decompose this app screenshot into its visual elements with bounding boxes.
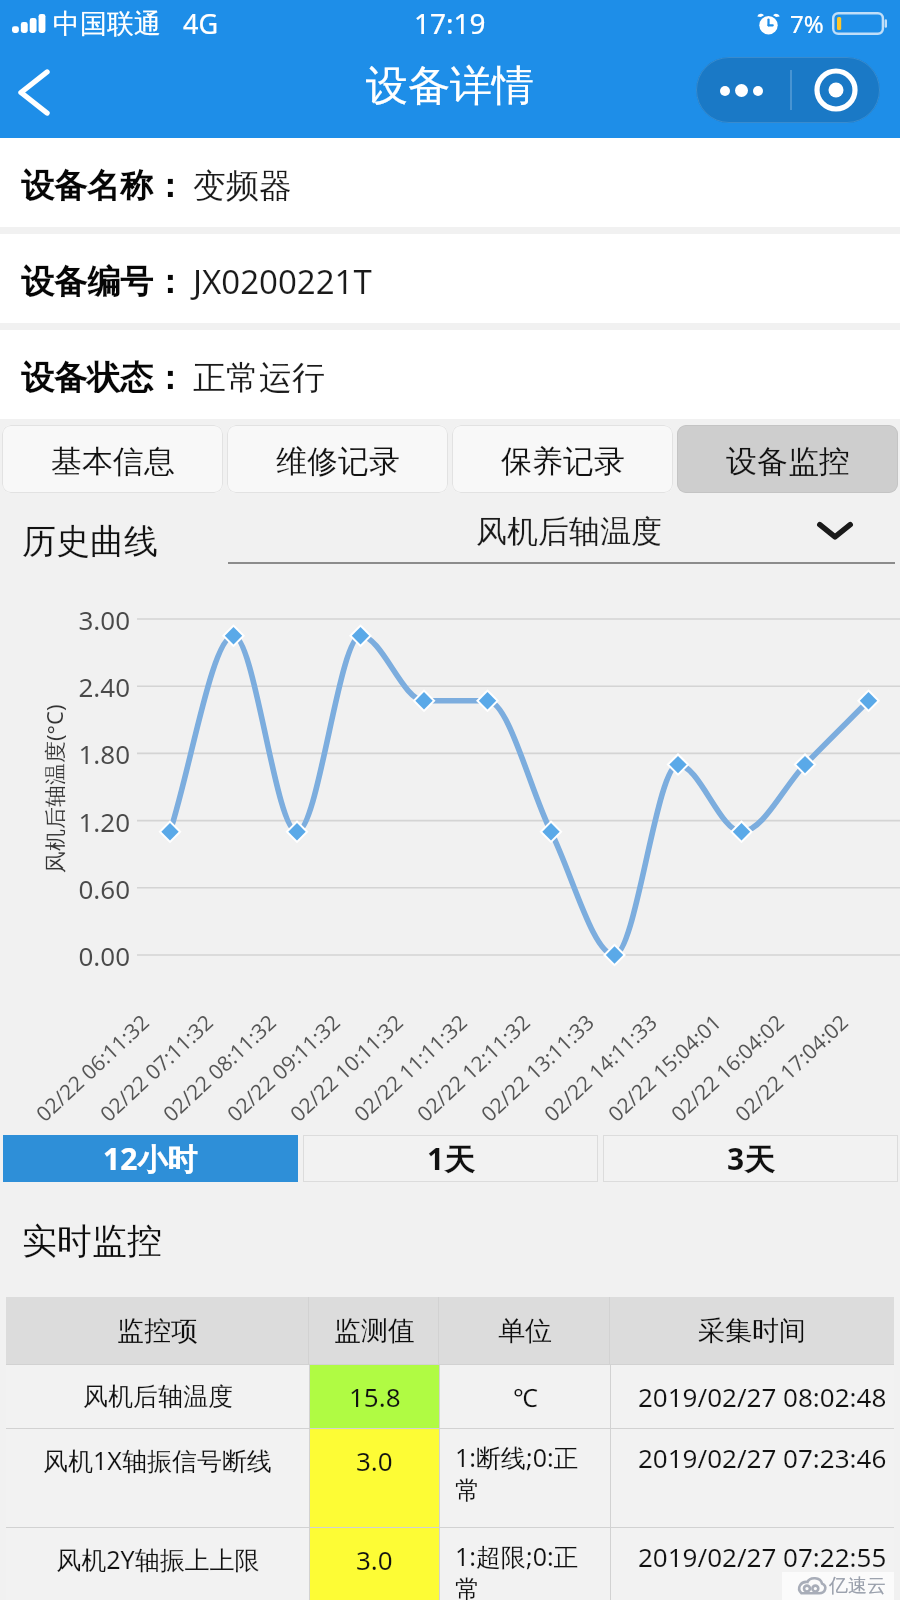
button[interactable]: 12小时 <box>3 1135 298 1182</box>
staticText: 设备状态： <box>21 357 186 399</box>
staticText: 亿速云 <box>829 1574 886 1598</box>
staticText: 设备名称： <box>21 165 186 207</box>
button[interactable]: 1天 <box>303 1135 598 1182</box>
staticText: 02/22 06:11:32 <box>30 1008 156 1128</box>
staticText: 风机后轴温度(°C) <box>39 704 69 873</box>
staticText: 保养记录 <box>501 442 625 481</box>
button[interactable]: 基本信息 <box>2 425 223 493</box>
staticText: 2019/02/27 08:02:48 <box>638 1379 887 1414</box>
staticText: 02/22 07:11:32 <box>94 1008 220 1128</box>
staticText: 1:断线;0:正常 <box>455 1440 584 1506</box>
staticText: 3天 <box>727 1138 775 1179</box>
button[interactable]: 风机后轴温度 <box>6 1365 894 1428</box>
staticText: 设备监控 <box>726 442 850 481</box>
staticText: 设备详情 <box>366 60 534 113</box>
staticText: 监控项 <box>117 1314 198 1348</box>
staticText: 单位 <box>498 1314 552 1348</box>
button[interactable]: 风机后轴温度 <box>228 504 895 564</box>
staticText: 17:19 <box>414 4 486 42</box>
staticText: 1天 <box>427 1138 475 1179</box>
button[interactable]: Back <box>0 46 68 138</box>
staticText: 12小时 <box>103 1138 198 1179</box>
staticText: 中国联通 <box>53 7 161 41</box>
button[interactable]: 设备名称： <box>0 138 900 227</box>
staticText: 02/22 17:04:02 <box>729 1008 855 1128</box>
staticText: 02/22 11:11:32 <box>348 1008 474 1128</box>
staticText: 变频器 <box>193 165 292 207</box>
staticText: ℃ <box>513 1380 538 1414</box>
button[interactable]: 设备状态： <box>0 330 900 419</box>
staticText: 02/22 12:11:32 <box>411 1008 537 1128</box>
button[interactable]: 3天 <box>603 1135 898 1182</box>
staticText: JX0200221T <box>193 259 372 304</box>
staticText: 2019/02/27 07:23:46 <box>638 1440 887 1475</box>
staticText: 历史曲线 <box>22 520 158 563</box>
staticText: 实时监控 <box>22 1219 162 1263</box>
staticText: 设备编号： <box>21 261 186 303</box>
button[interactable]: 风机1X轴振信号断线 <box>6 1429 894 1527</box>
staticText: 1:超限;0:正常 <box>455 1539 584 1600</box>
button[interactable]: 风机2Y轴振上上限 <box>6 1528 894 1600</box>
staticText: 风机后轴温度 <box>476 512 662 551</box>
staticText: 4G <box>183 5 219 42</box>
button[interactable]: 保养记录 <box>452 425 673 493</box>
staticText: 02/22 09:11:32 <box>221 1008 347 1128</box>
staticText: 风机后轴温度 <box>83 1381 233 1412</box>
staticText: 监测值 <box>334 1314 415 1348</box>
staticText: 3.0 <box>356 1443 393 1478</box>
staticText: 02/22 10:11:32 <box>284 1008 410 1128</box>
button[interactable]: Close mini program <box>792 57 880 123</box>
staticText: 3.00 <box>78 602 130 637</box>
staticText: 1.80 <box>78 736 130 771</box>
staticText: 风机2Y轴振上上限 <box>56 1542 260 1576</box>
staticText: 0.00 <box>78 938 130 973</box>
staticText: 1.20 <box>78 804 130 839</box>
staticText: 正常运行 <box>193 357 325 399</box>
staticText: 3.0 <box>356 1542 393 1577</box>
button[interactable]: 设备监控 <box>677 425 898 493</box>
staticText: 2019/02/27 07:22:55 <box>638 1539 887 1574</box>
staticText: 0.60 <box>78 871 130 906</box>
staticText: 基本信息 <box>51 442 175 481</box>
staticText: 2.40 <box>78 669 130 704</box>
staticText: 02/22 13:11:33 <box>475 1008 601 1128</box>
staticText: 15.8 <box>349 1379 401 1414</box>
staticText: 采集时间 <box>698 1314 806 1348</box>
staticText: 02/22 15:04:01 <box>602 1008 728 1128</box>
button[interactable]: More options <box>696 57 790 123</box>
staticText: 维修记录 <box>276 442 400 481</box>
staticText: 7% <box>790 7 824 40</box>
button[interactable]: 维修记录 <box>227 425 448 493</box>
staticText: 风机1X轴振信号断线 <box>43 1443 272 1477</box>
staticText: 02/22 08:11:32 <box>157 1008 283 1128</box>
staticText: 02/22 16:04:02 <box>665 1008 791 1128</box>
staticText: 02/22 14:11:33 <box>538 1008 664 1128</box>
button[interactable]: 设备编号： <box>0 234 900 323</box>
